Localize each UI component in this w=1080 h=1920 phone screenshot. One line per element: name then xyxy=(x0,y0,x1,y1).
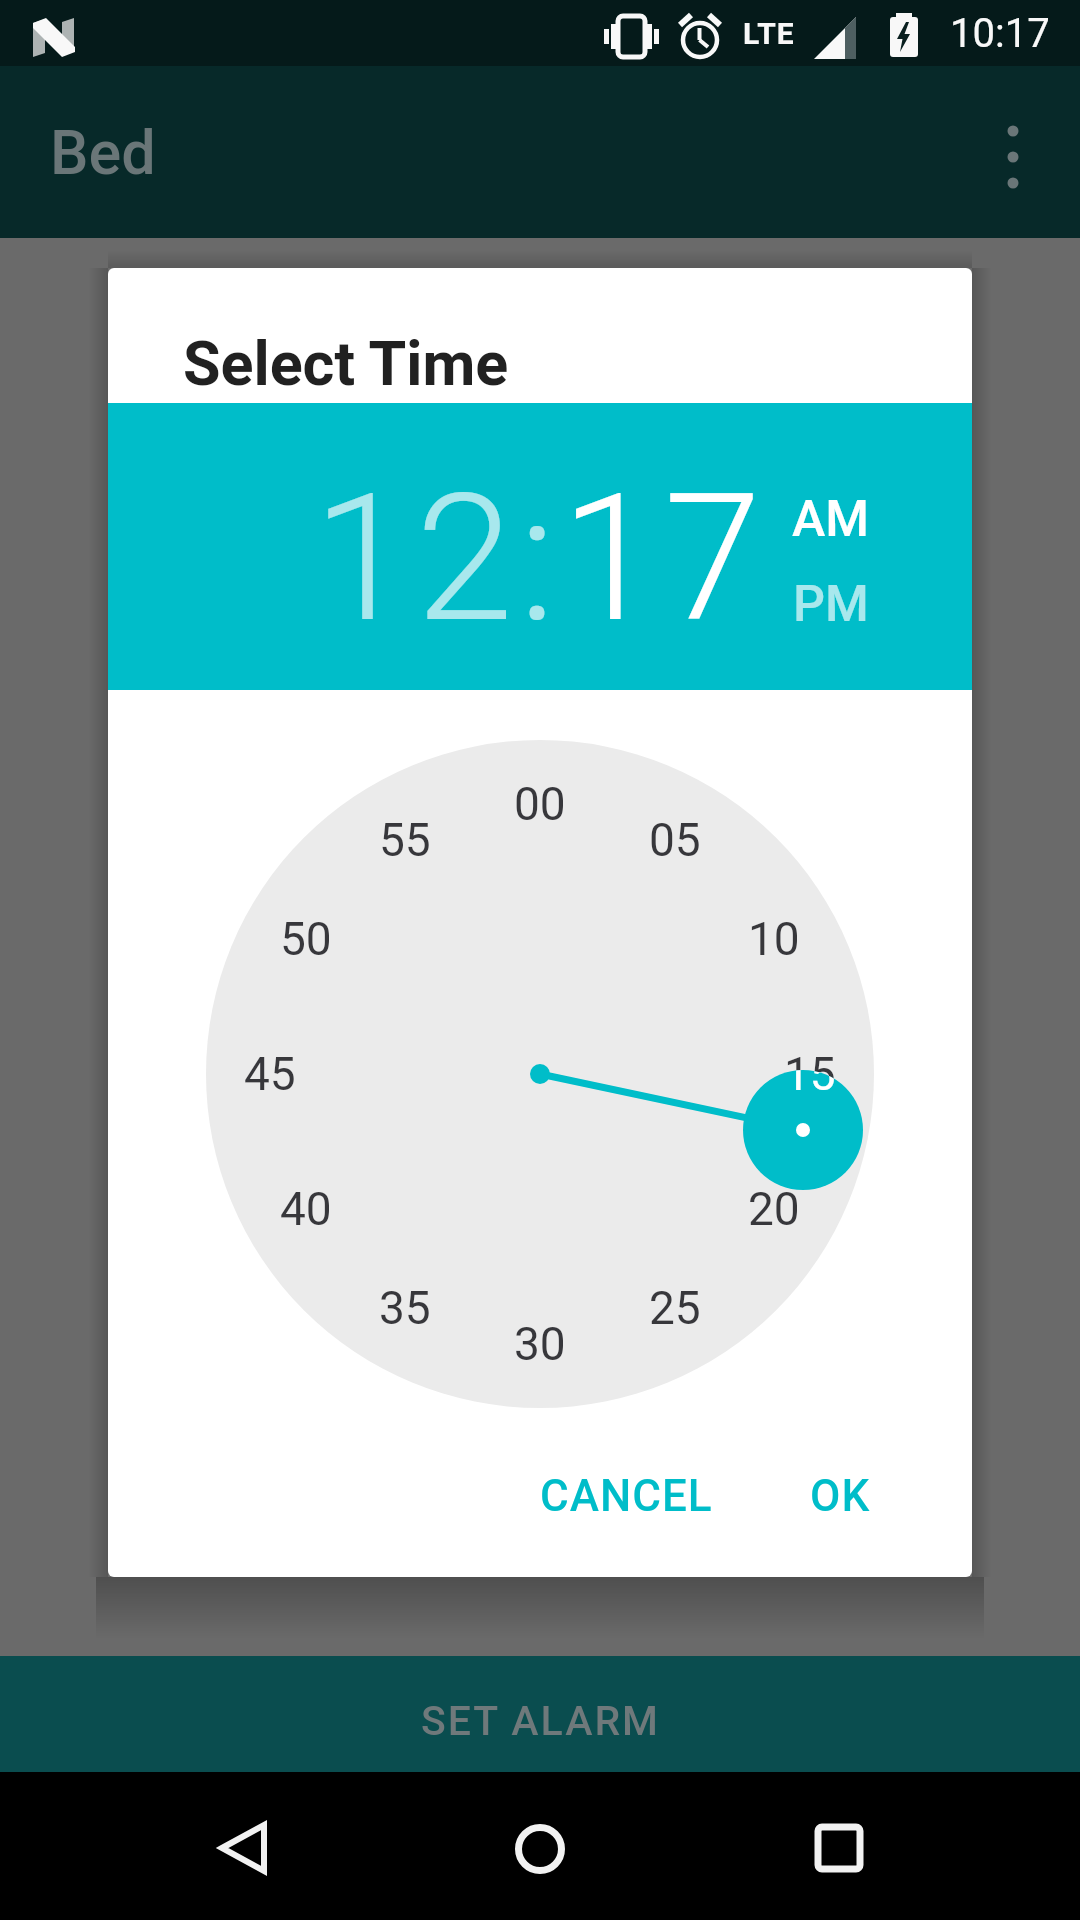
button[interactable]: AM xyxy=(792,490,870,549)
staticText: 10:17 xyxy=(950,10,1050,57)
staticText: 35 xyxy=(379,1281,431,1335)
staticText: PM xyxy=(793,575,869,634)
staticText: 30 xyxy=(514,1317,566,1371)
staticText: 05 xyxy=(649,813,701,867)
button[interactable]: PM xyxy=(793,575,869,634)
staticText: AM xyxy=(792,490,870,549)
button[interactable]: OK xyxy=(780,1448,900,1544)
button[interactable] xyxy=(980,66,1080,238)
staticText: 50 xyxy=(280,912,332,966)
button[interactable] xyxy=(360,1772,720,1920)
staticText: 12:17 xyxy=(313,456,767,662)
staticText: 10 xyxy=(748,912,800,966)
staticText: 15 xyxy=(784,1070,836,1101)
staticText: Bed xyxy=(50,117,156,188)
staticText: Select Time xyxy=(183,328,509,399)
staticText: 20 xyxy=(748,1182,800,1236)
staticText: 25 xyxy=(649,1281,701,1335)
staticText: 40 xyxy=(280,1182,332,1236)
staticText: 55 xyxy=(379,813,431,867)
staticText: LTE xyxy=(743,16,795,51)
staticText: OK xyxy=(810,1470,871,1522)
staticText: SET ALARM xyxy=(421,1697,660,1745)
staticText: 45 xyxy=(244,1047,296,1101)
button[interactable] xyxy=(0,1772,360,1920)
button[interactable] xyxy=(720,1772,1080,1920)
button[interactable]: SET ALARM xyxy=(0,1656,1080,1772)
staticText: 15 xyxy=(784,1047,836,1101)
button[interactable]: CANCEL xyxy=(526,1448,726,1544)
staticText: 00 xyxy=(514,777,566,831)
staticText: CANCEL xyxy=(540,1470,713,1522)
